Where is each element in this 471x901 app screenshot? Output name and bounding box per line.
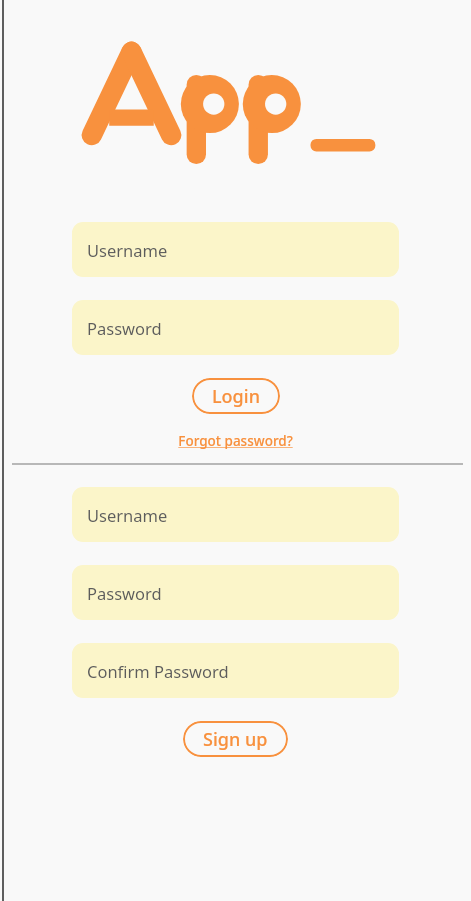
staticText: Password [87, 582, 162, 604]
button[interactable]: Login [192, 378, 280, 414]
staticText: Forgot password? [178, 432, 293, 450]
button[interactable]: Username [72, 487, 399, 542]
button[interactable]: Username [72, 222, 399, 277]
button[interactable]: Password [72, 565, 399, 620]
button[interactable]: Sign up [183, 721, 288, 757]
staticText: Sign up [203, 727, 268, 752]
staticText: Username [87, 504, 168, 526]
button[interactable]: Confirm Password [72, 643, 399, 698]
staticText: Username [87, 239, 168, 261]
staticText: Confirm Password [87, 660, 229, 682]
button[interactable]: Forgot password? [172, 430, 299, 452]
staticText: Login [212, 384, 260, 409]
staticText: Password [87, 317, 162, 339]
button[interactable]: Password [72, 300, 399, 355]
